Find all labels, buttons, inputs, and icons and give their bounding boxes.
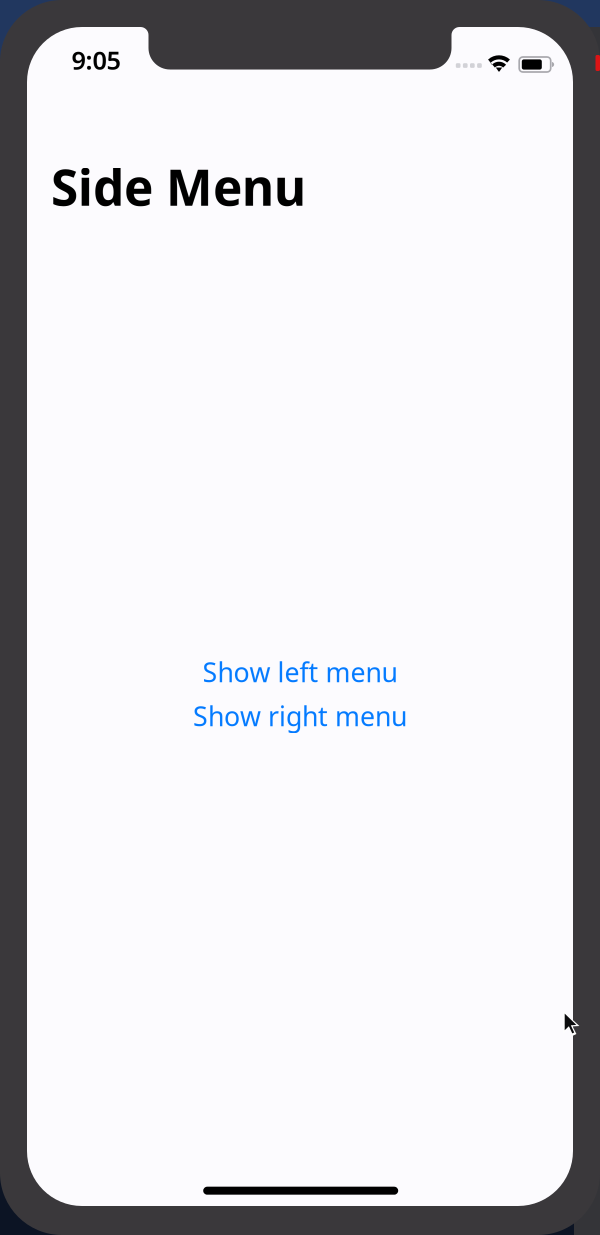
- button[interactable]: Show left menu: [160, 650, 440, 694]
- button[interactable]: Show right menu: [160, 694, 440, 738]
- staticText: Side Menu: [51, 154, 306, 219]
- staticText: 9:05: [71, 43, 120, 77]
- staticText: Show left menu: [202, 654, 397, 690]
- staticText: Show right menu: [193, 698, 407, 734]
